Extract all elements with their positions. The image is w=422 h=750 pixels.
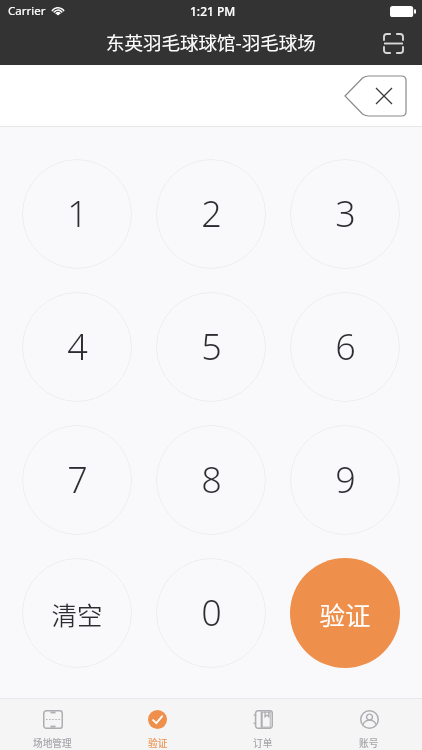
staticText: 0 — [201, 588, 222, 637]
staticText: 账号 — [359, 736, 379, 750]
button[interactable]: 场地管理 — [0, 699, 105, 750]
staticText: 3 — [335, 189, 356, 238]
button[interactable]: 9 — [290, 425, 400, 535]
staticText: 7 — [67, 455, 88, 504]
button[interactable]: 0 — [156, 558, 266, 668]
staticText: 6 — [335, 322, 356, 371]
button[interactable]: 5 — [156, 292, 266, 402]
button[interactable]: 账号 — [316, 699, 422, 750]
staticText: 清空 — [51, 595, 103, 632]
staticText: 1 — [67, 189, 88, 238]
button[interactable]: 3 — [290, 159, 400, 269]
button[interactable]: 1 — [22, 159, 132, 269]
staticText: 验证 — [148, 736, 168, 750]
button[interactable]: 2 — [156, 159, 266, 269]
button[interactable]: Scan QR code — [375, 25, 411, 61]
staticText: Carrier — [8, 3, 46, 19]
button[interactable]: 6 — [290, 292, 400, 402]
staticText: 4 — [67, 322, 88, 371]
staticText: 2 — [201, 189, 222, 238]
button[interactable]: 验证 — [290, 558, 400, 668]
staticText: 验证 — [319, 595, 371, 632]
staticText: 场地管理 — [33, 736, 72, 750]
button[interactable]: 7 — [22, 425, 132, 535]
button[interactable]: 清空 — [22, 558, 132, 668]
staticText: 东英羽毛球球馆-羽毛球场 — [106, 29, 316, 56]
button[interactable]: 订单 — [210, 699, 316, 750]
staticText: 5 — [201, 322, 222, 371]
button[interactable]: 8 — [156, 425, 266, 535]
staticText: 1:21 PM — [190, 3, 236, 19]
button[interactable]: 验证 — [105, 699, 210, 750]
button[interactable]: 4 — [22, 292, 132, 402]
staticText: 9 — [335, 455, 356, 504]
staticText: 订单 — [253, 736, 273, 750]
staticText: 8 — [201, 455, 222, 504]
button[interactable]: Backspace — [344, 76, 406, 116]
